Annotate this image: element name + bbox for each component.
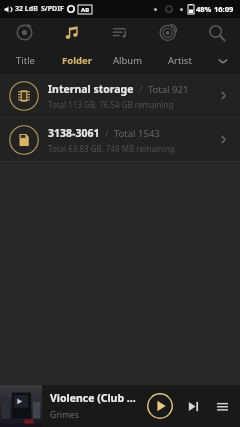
staticText: 32 LdB	[15, 4, 38, 14]
button[interactable]: Playlist	[96, 18, 144, 47]
button[interactable]: Artist	[154, 47, 206, 74]
button[interactable]: Violence (Club Mix)	[50, 385, 141, 427]
staticText: Total 63.83 GB, 748 MB remaining	[48, 143, 175, 154]
button[interactable]: Next	[180, 393, 206, 419]
button[interactable]: Internal storage	[0, 74, 240, 117]
staticText: Violence (Club Mix)	[50, 391, 141, 405]
button[interactable]: Queue	[208, 392, 236, 420]
staticText: Artist	[168, 54, 192, 67]
staticText: Title	[16, 54, 35, 67]
staticText: Total 921	[148, 83, 189, 96]
staticText: S/PDIF	[41, 4, 64, 14]
staticText: Grimes	[50, 409, 79, 421]
button[interactable]: Album art	[0, 385, 42, 427]
staticText: Folder	[62, 54, 92, 67]
staticText: Total 113 GB, 76.54 GB remaining	[48, 99, 174, 110]
button[interactable]: More tabs	[206, 47, 240, 74]
button[interactable]: Search	[192, 18, 240, 47]
staticText: /	[139, 83, 143, 95]
button[interactable]: Library	[48, 18, 96, 47]
button[interactable]: Title	[0, 47, 51, 74]
staticText: 48%	[196, 4, 212, 14]
staticText: Internal storage	[48, 82, 134, 96]
button[interactable]: 3138-3061	[0, 118, 240, 161]
staticText: 16:09	[214, 4, 234, 14]
staticText: Total 1543	[114, 127, 160, 140]
button[interactable]: Album	[102, 47, 154, 74]
button[interactable]: Folder	[51, 47, 102, 74]
button[interactable]: Play	[145, 391, 175, 421]
button[interactable]: Effects	[144, 18, 192, 47]
staticText: 3138-3061	[48, 126, 100, 140]
button[interactable]: Now playing	[0, 18, 48, 47]
staticText: /	[105, 127, 109, 139]
staticText: Album	[113, 54, 143, 67]
staticText: AB	[81, 6, 90, 14]
